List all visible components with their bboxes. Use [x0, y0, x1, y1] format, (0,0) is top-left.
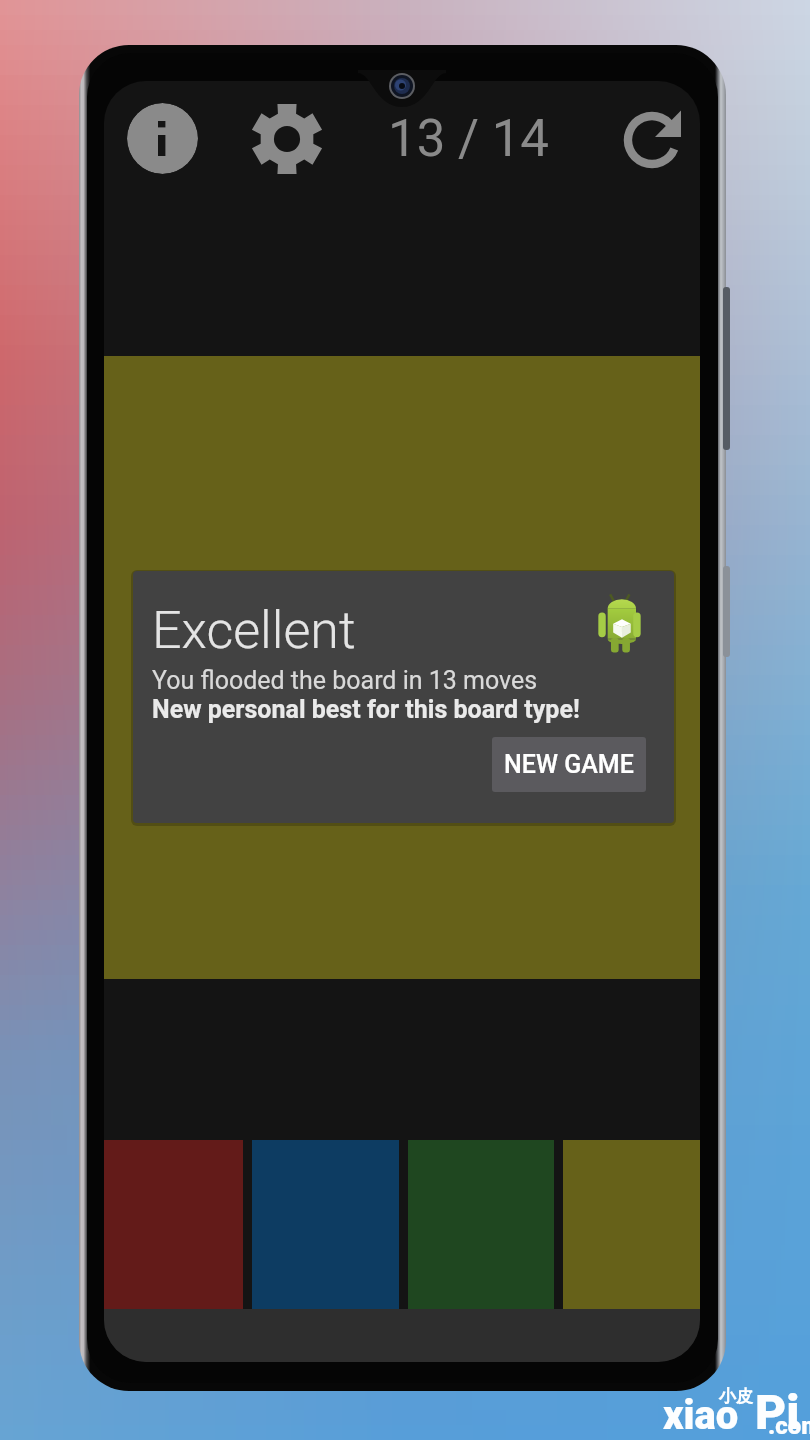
- button[interactable]: Restart: [616, 104, 688, 176]
- staticText: 小皮: [719, 1386, 753, 1407]
- staticText: NEW GAME: [504, 750, 634, 779]
- button[interactable]: Info: [127, 103, 198, 174]
- staticText: 13 / 14: [388, 109, 549, 169]
- staticText: New personal best for this board type!: [152, 695, 580, 724]
- staticText: xiao: [663, 1392, 739, 1439]
- staticText: .com: [768, 1412, 810, 1440]
- staticText: Pi: [755, 1384, 800, 1440]
- staticText: You flooded the board in 13 moves: [152, 666, 538, 695]
- button[interactable]: NEW GAME: [492, 737, 646, 792]
- button[interactable]: Settings: [249, 101, 325, 177]
- staticText: Excellent: [152, 600, 356, 661]
